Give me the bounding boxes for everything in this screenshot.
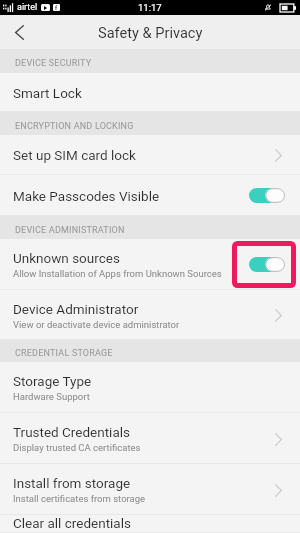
button[interactable]: Set up SIM card lock xyxy=(0,135,300,175)
button[interactable]: Unknown sources xyxy=(0,239,300,290)
staticText: Safety & Privacy xyxy=(98,24,203,41)
staticText: Install certificates from storage xyxy=(13,493,146,504)
staticText: airtel xyxy=(17,2,38,13)
staticText: Hardware Support xyxy=(13,391,90,402)
staticText: DEVICE ADMINISTRATION xyxy=(15,225,125,236)
staticText: 11:17 xyxy=(138,2,162,13)
staticText: ENCRYPTION AND LOCKING xyxy=(15,121,134,132)
button[interactable]: Device Administrator xyxy=(0,290,300,340)
button[interactable]: Storage Type xyxy=(0,362,300,413)
staticText: Set up SIM card lock xyxy=(13,147,136,163)
button[interactable]: Trusted Credentials xyxy=(0,413,300,464)
staticText: Allow Installation of Apps from Unknown … xyxy=(13,268,222,279)
staticText: Make Passcodes Visible xyxy=(13,188,160,204)
staticText: View or deactivate device administrator xyxy=(13,319,180,330)
staticText: Install from storage xyxy=(13,475,131,491)
button[interactable]: Install from storage xyxy=(0,464,300,515)
staticText: CREDENTIAL STORAGE xyxy=(15,348,113,359)
staticText: Smart Lock xyxy=(13,85,82,101)
button[interactable]: Toggle xyxy=(249,256,285,273)
staticText: Unknown sources xyxy=(13,250,120,266)
staticText: f xyxy=(55,4,58,11)
staticText: Clear all credentials xyxy=(13,515,131,531)
staticText: Storage Type xyxy=(13,373,92,389)
button[interactable]: Smart Lock xyxy=(0,73,300,112)
staticText: DEVICE SECURITY xyxy=(15,58,92,69)
button[interactable]: Make Passcodes Visible xyxy=(0,175,300,216)
staticText: Device Administrator xyxy=(13,301,139,317)
button[interactable]: Back xyxy=(0,15,38,49)
button[interactable]: Toggle xyxy=(249,187,285,204)
button[interactable]: Clear all credentials xyxy=(0,515,300,533)
staticText: Display trusted CA certificates xyxy=(13,442,141,453)
staticText: Trusted Credentials xyxy=(13,424,130,440)
